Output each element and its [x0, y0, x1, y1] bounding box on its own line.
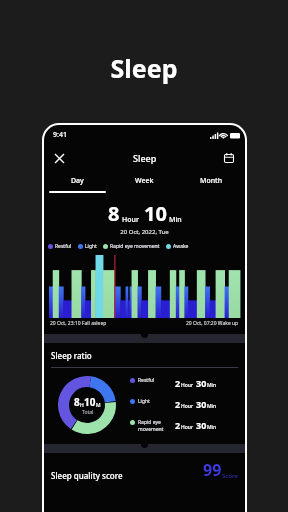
button[interactable]: Calendar — [219, 148, 239, 168]
staticText: Restful — [55, 243, 72, 250]
staticText: Rapid eye — [138, 419, 161, 426]
staticText: Awake — [173, 243, 189, 250]
staticText: M — [96, 402, 101, 409]
staticText: 20 Oct, 2022, Tue — [44, 228, 245, 236]
staticText: Hour — [122, 215, 139, 225]
staticText: 10 — [144, 200, 167, 227]
staticText: 30 — [196, 398, 207, 410]
staticText: H — [80, 402, 84, 409]
staticText: 2 — [175, 398, 181, 410]
button[interactable]: Week — [111, 171, 178, 191]
staticText: 99 — [203, 459, 222, 481]
staticText: 2 — [175, 377, 181, 389]
staticText: Hour — [181, 403, 194, 410]
staticText: 8 — [108, 200, 120, 227]
staticText: Day — [71, 176, 84, 186]
staticText: Week — [135, 176, 154, 186]
staticText: 2 — [175, 419, 181, 431]
staticText: Hour — [181, 382, 194, 389]
staticText: 20 Oct, 23:10 Fall asleep — [50, 320, 107, 327]
staticText: 20 Oct, 07:20 Wake up — [186, 320, 239, 327]
staticText: Min — [207, 382, 217, 389]
staticText: Month — [200, 176, 223, 186]
staticText: Min — [169, 215, 182, 225]
staticText: 10 — [84, 395, 96, 409]
staticText: Min — [207, 424, 217, 431]
staticText: Sleep quality score — [51, 470, 123, 481]
staticText: 8 — [74, 395, 80, 409]
staticText: 30 — [196, 419, 207, 431]
staticText: Light — [138, 398, 150, 405]
staticText: 30 — [196, 377, 207, 389]
staticText: Rapid eye movement — [110, 243, 160, 250]
staticText: Hour — [181, 424, 194, 431]
staticText: Restful — [138, 377, 155, 384]
button[interactable]: Day — [44, 171, 111, 191]
button[interactable]: Close — [49, 148, 69, 168]
staticText: Sleep ratio — [51, 350, 92, 361]
staticText: Sleep — [133, 152, 157, 164]
staticText: Light — [85, 243, 97, 250]
button[interactable]: Month — [178, 171, 245, 191]
staticText: Score — [222, 472, 238, 480]
staticText: Sleep — [0, 51, 288, 85]
staticText: movement — [138, 426, 164, 433]
staticText: 9:41 — [53, 130, 67, 140]
staticText: Total — [82, 409, 94, 416]
staticText: Min — [207, 403, 217, 410]
